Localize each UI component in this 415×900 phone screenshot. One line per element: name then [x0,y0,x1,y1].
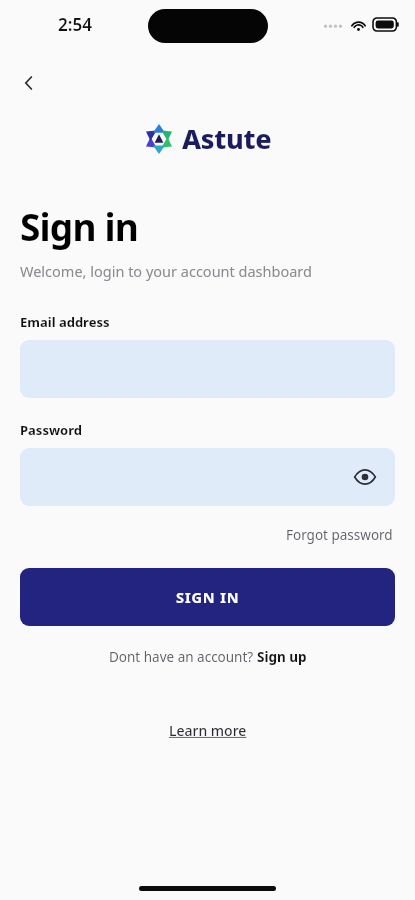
button[interactable]: Password field [20,448,395,506]
staticText: Email address [20,313,110,331]
staticText: 2:54 [58,13,92,36]
button[interactable]: Learn more [165,718,251,743]
staticText: Learn more [169,721,247,740]
staticText: Sign up [257,648,307,666]
staticText: SIGN IN [176,587,240,607]
staticText: Dont have an account? [109,648,257,666]
staticText: Password [20,421,82,439]
button[interactable]: Show password [345,457,385,497]
staticText: Astute [182,120,272,157]
button[interactable]: Sign up [257,648,307,666]
button[interactable]: Back [6,60,52,106]
button[interactable]: Forgot password [284,523,395,547]
staticText: Welcome, login to your account dashboard [20,261,312,281]
staticText: Sign in [20,201,139,251]
button[interactable]: SIGN IN [20,568,395,626]
staticText: Forgot password [286,526,393,544]
